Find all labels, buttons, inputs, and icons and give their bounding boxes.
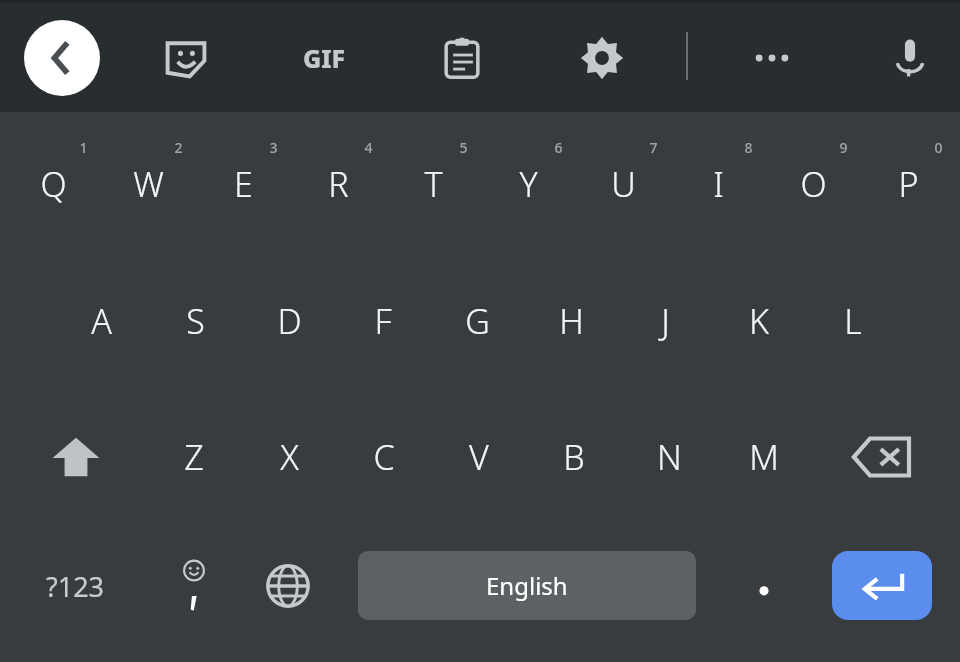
staticText: A: [91, 298, 112, 344]
staticText: V: [469, 434, 489, 480]
staticText: 7: [649, 138, 658, 157]
staticText: English: [486, 569, 568, 602]
staticText: GIF: [303, 41, 346, 75]
button[interactable]: A: [54, 277, 148, 365]
button[interactable]: Z: [147, 413, 241, 501]
staticText: 2: [174, 138, 183, 157]
button[interactable]: V: [432, 413, 526, 501]
staticText: P: [898, 161, 919, 207]
staticText: N: [657, 434, 682, 480]
staticText: Q: [40, 161, 67, 207]
staticText: 9: [839, 138, 848, 157]
staticText: O: [800, 161, 827, 207]
button[interactable]: Voice input: [876, 24, 944, 92]
staticText: 3: [269, 138, 278, 157]
staticText: B: [563, 434, 585, 480]
button[interactable]: L: [806, 277, 900, 365]
button[interactable]: GIF: [288, 28, 360, 88]
button[interactable]: Q: [6, 140, 100, 228]
staticText: Y: [519, 161, 538, 207]
button[interactable]: Period: [722, 551, 806, 621]
button[interactable]: X: [242, 413, 336, 501]
staticText: C: [373, 434, 395, 480]
staticText: M: [749, 434, 779, 480]
button[interactable]: W: [101, 140, 195, 228]
button[interactable]: Backspace: [835, 413, 929, 501]
button[interactable]: Enter: [832, 551, 932, 620]
button[interactable]: English: [358, 551, 696, 620]
staticText: R: [328, 161, 349, 207]
staticText: 0: [934, 138, 943, 157]
staticText: 4: [364, 138, 373, 157]
button[interactable]: R: [291, 140, 385, 228]
staticText: S: [186, 298, 205, 344]
button[interactable]: Change keyboard: [244, 551, 332, 621]
button[interactable]: Settings: [568, 24, 636, 92]
staticText: 6: [554, 138, 563, 157]
staticText: ?123: [46, 568, 105, 605]
button[interactable]: Shift: [29, 413, 123, 501]
staticText: W: [133, 161, 164, 207]
button[interactable]: Clipboard: [428, 24, 496, 92]
staticText: Z: [184, 434, 204, 480]
button[interactable]: D: [242, 277, 336, 365]
staticText: F: [374, 298, 392, 344]
button[interactable]: U: [576, 140, 670, 228]
staticText: D: [277, 298, 302, 344]
staticText: G: [465, 298, 490, 344]
staticText: J: [661, 298, 670, 344]
button[interactable]: J: [618, 277, 712, 365]
staticText: X: [280, 434, 299, 480]
staticText: 5: [459, 138, 468, 157]
staticText: H: [559, 298, 584, 344]
staticText: U: [611, 161, 636, 207]
button[interactable]: N: [622, 413, 716, 501]
button[interactable]: I: [671, 140, 765, 228]
staticText: 1: [79, 138, 88, 157]
button[interactable]: H: [524, 277, 618, 365]
button[interactable]: More options: [738, 24, 806, 92]
staticText: 8: [744, 138, 753, 157]
staticText: L: [844, 298, 862, 344]
button[interactable]: T: [386, 140, 480, 228]
button[interactable]: K: [712, 277, 806, 365]
button[interactable]: ?123: [27, 551, 123, 621]
button[interactable]: G: [430, 277, 524, 365]
staticText: T: [424, 161, 443, 207]
button[interactable]: F: [336, 277, 430, 365]
staticText: E: [234, 161, 253, 207]
button[interactable]: B: [527, 413, 621, 501]
button[interactable]: Emoji and comma: [150, 551, 238, 621]
button[interactable]: Stickers: [152, 24, 220, 92]
button[interactable]: C: [337, 413, 431, 501]
button[interactable]: Back: [24, 20, 100, 96]
staticText: K: [749, 298, 769, 344]
button[interactable]: E: [196, 140, 290, 228]
button[interactable]: S: [148, 277, 242, 365]
button[interactable]: M: [717, 413, 811, 501]
button[interactable]: Y: [481, 140, 575, 228]
button[interactable]: O: [766, 140, 860, 228]
staticText: I: [713, 161, 724, 207]
button[interactable]: P: [861, 140, 955, 228]
